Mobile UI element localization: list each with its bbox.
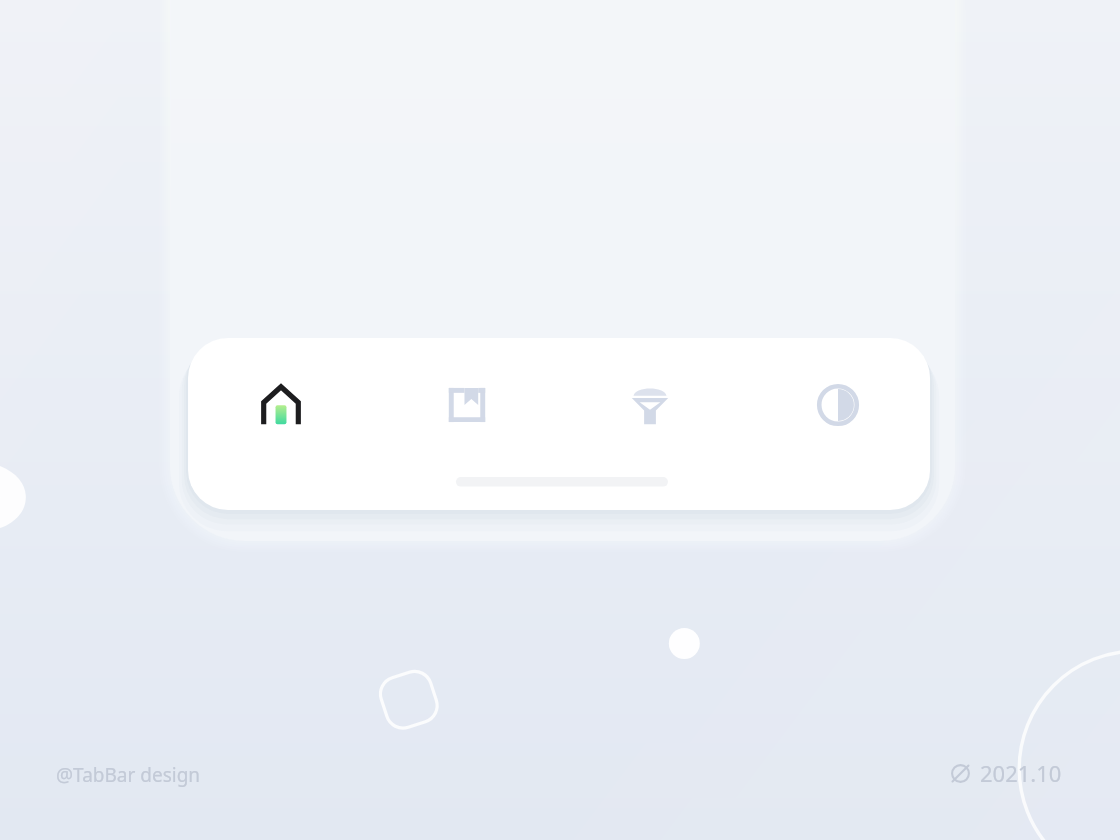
staticText: 2021.10 — [980, 758, 1062, 788]
button[interactable]: Home — [239, 363, 323, 447]
button[interactable]: Discover — [608, 363, 692, 447]
button[interactable]: Library — [425, 363, 509, 447]
staticText: @TabBar design — [56, 762, 201, 788]
button[interactable]: Appearance — [796, 363, 880, 447]
